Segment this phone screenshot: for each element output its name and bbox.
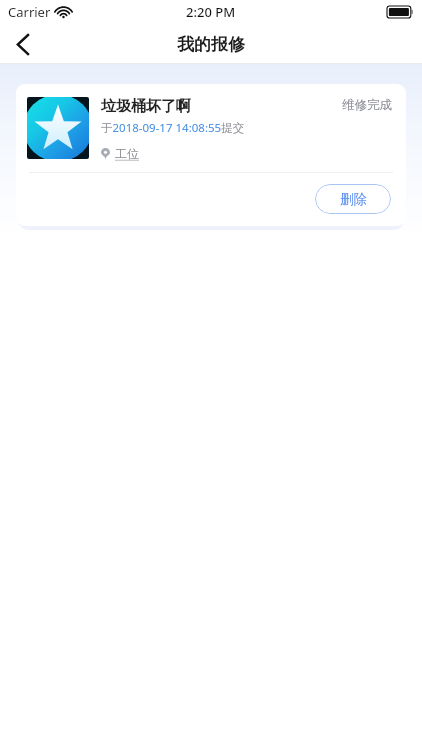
staticText: 工位 xyxy=(115,146,139,161)
staticText: 维修完成 xyxy=(342,97,392,113)
staticText: 我的报修 xyxy=(177,34,245,55)
button[interactable]: 删除 xyxy=(315,184,391,214)
button[interactable]: 垃圾桶坏了啊 xyxy=(16,84,406,226)
staticText: 删除 xyxy=(340,191,367,208)
staticText: 2:20 PM xyxy=(186,3,236,21)
staticText: 于2018-09-17 14:08:55提交 xyxy=(101,120,245,136)
button[interactable]: Back xyxy=(0,24,46,64)
staticText: Carrier xyxy=(8,3,51,21)
staticText: 垃圾桶坏了啊 xyxy=(101,97,191,116)
